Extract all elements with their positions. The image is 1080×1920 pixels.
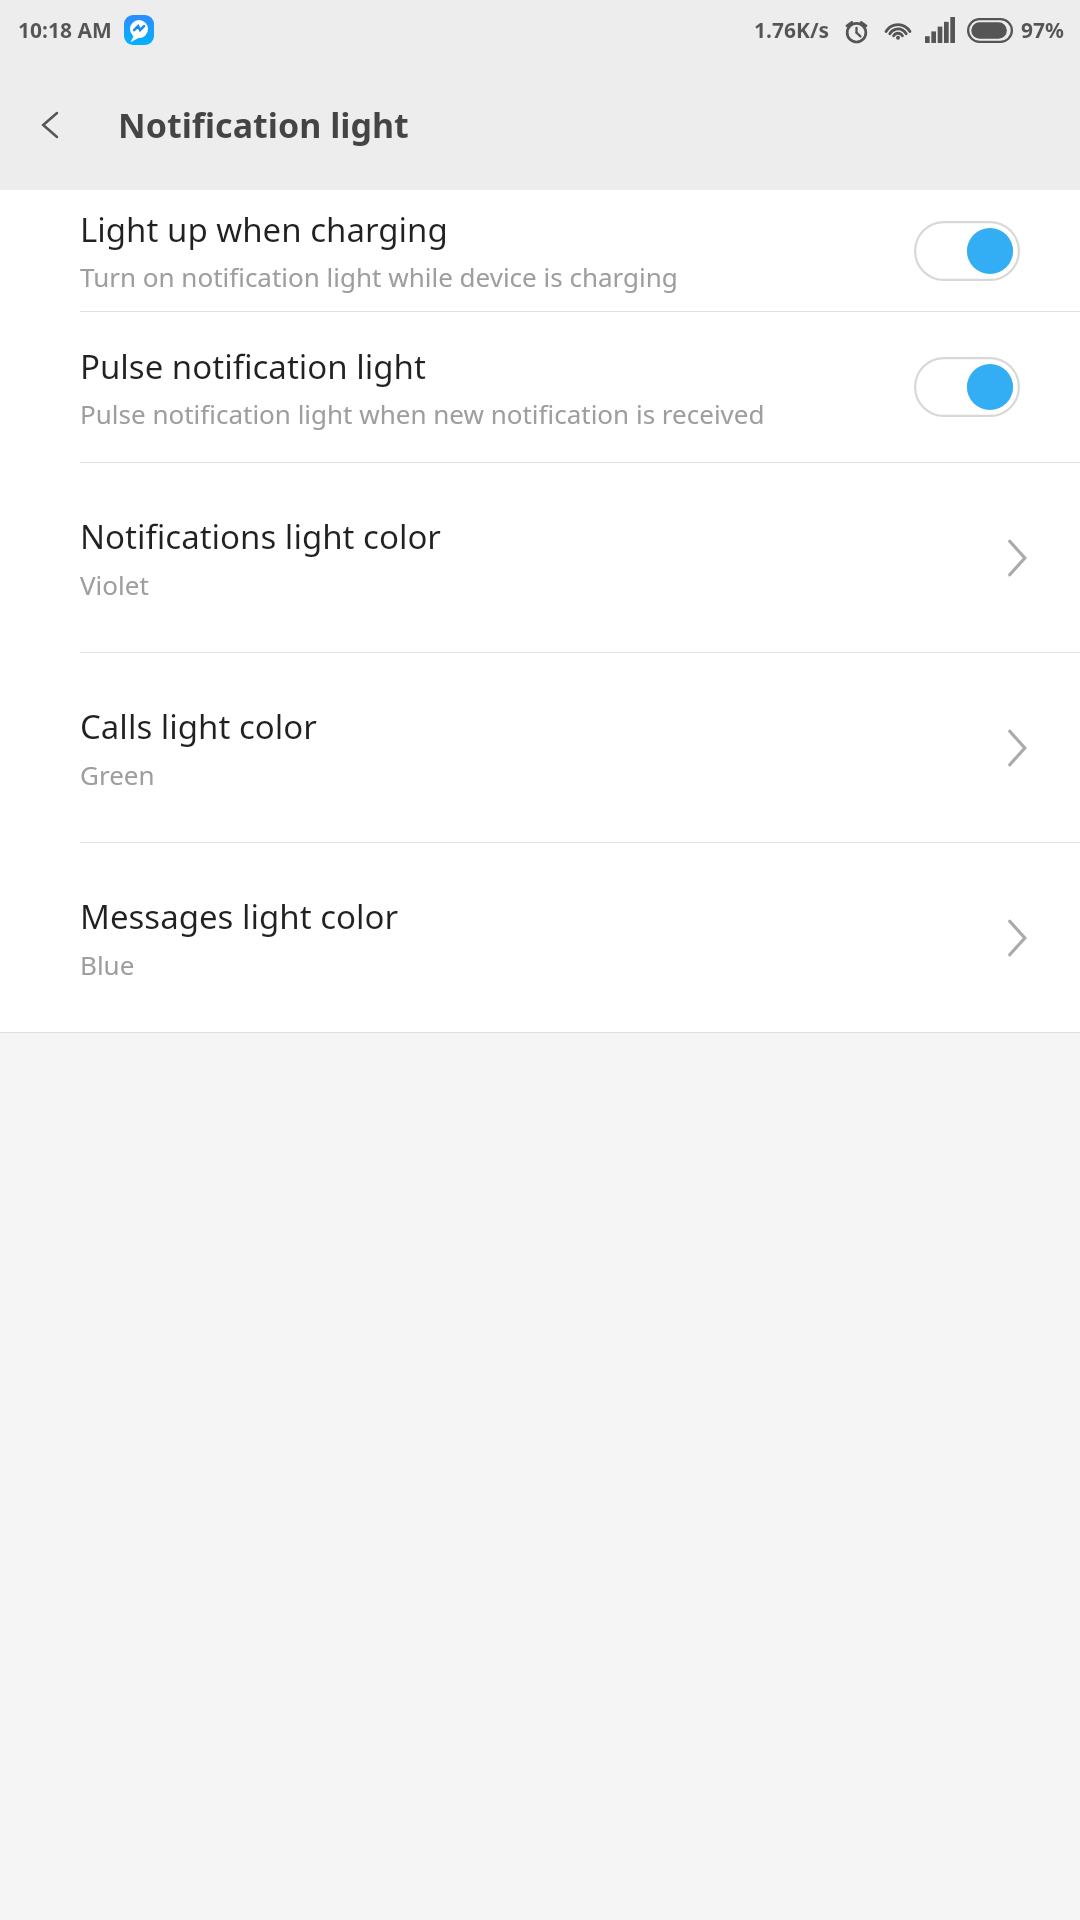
staticText: 10:18 AM — [18, 16, 112, 45]
button[interactable]: Light up when charging — [0, 190, 1080, 311]
button[interactable]: Messages light color — [0, 843, 1080, 1032]
button[interactable]: Pulse notification light — [0, 312, 1080, 462]
staticText: Violet — [80, 567, 149, 602]
staticText: Notification light — [118, 102, 409, 148]
staticText: Blue — [80, 947, 135, 982]
staticText: Light up when charging — [80, 207, 448, 252]
button[interactable]: Toggle — [914, 221, 1020, 281]
button[interactable]: Notifications light color — [0, 463, 1080, 652]
staticText: Pulse notification light — [80, 344, 426, 389]
staticText: Notifications light color — [80, 514, 441, 559]
button[interactable]: Back — [20, 94, 82, 156]
staticText: Pulse notification light when new notifi… — [80, 396, 765, 431]
staticText: Green — [80, 757, 155, 792]
staticText: 97% — [1021, 16, 1064, 45]
staticText: Messages light color — [80, 894, 399, 939]
button[interactable]: Toggle — [914, 357, 1020, 417]
staticText: Calls light color — [80, 704, 317, 749]
staticText: 1.76K/s — [754, 16, 830, 45]
button[interactable]: Calls light color — [0, 653, 1080, 842]
staticText: Turn on notification light while device … — [80, 259, 678, 294]
